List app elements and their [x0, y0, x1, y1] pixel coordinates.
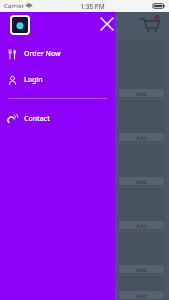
staticText: Add [136, 178, 147, 185]
staticText: 1:35 PM [80, 2, 105, 11]
button[interactable]: Logo [12, 17, 28, 33]
button[interactable]: Add [118, 100, 165, 142]
button[interactable]: Add [118, 40, 165, 98]
staticText: Contact [24, 114, 50, 124]
button[interactable]: Add [119, 291, 164, 299]
staticText: Add [136, 222, 147, 229]
button[interactable]: Add [119, 265, 164, 273]
button[interactable]: Add [118, 144, 165, 186]
staticText: Add [136, 134, 147, 141]
button[interactable]: Add [119, 133, 164, 141]
button[interactable]: Add [118, 232, 165, 274]
button[interactable]: Add [118, 188, 165, 230]
staticText: Carrier [4, 2, 24, 10]
button[interactable]: Login [0, 72, 115, 88]
button[interactable]: Add [119, 177, 164, 185]
staticText: Login [24, 75, 43, 85]
button[interactable]: Add [119, 89, 164, 97]
staticText: Add [136, 90, 147, 97]
button[interactable]: Close [95, 12, 119, 36]
button[interactable]: Cart [137, 12, 163, 38]
button[interactable]: Order Now [0, 46, 115, 62]
button[interactable]: Add [118, 276, 165, 300]
staticText: Add [136, 292, 147, 299]
staticText: Add [136, 266, 147, 273]
staticText: Order Now [24, 49, 61, 59]
button[interactable]: Contact [0, 111, 115, 127]
button[interactable]: Add [119, 221, 164, 229]
